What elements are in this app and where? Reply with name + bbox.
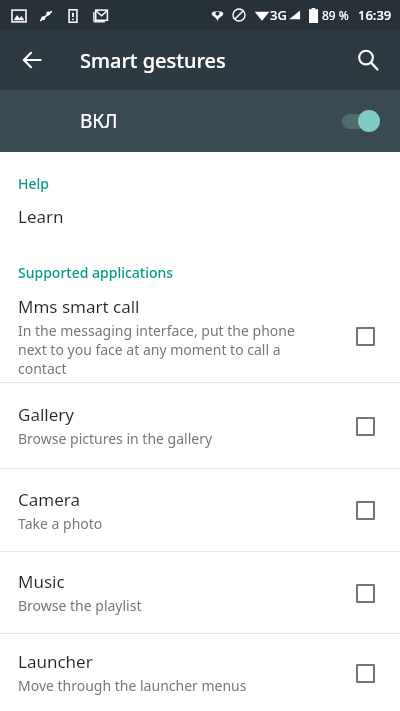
button[interactable]: ВКЛ (0, 90, 400, 152)
staticText: Learn (18, 205, 64, 228)
staticText: 16:39 (358, 6, 392, 24)
button[interactable]: Music (0, 552, 400, 633)
button[interactable]: Gallery (0, 383, 400, 468)
staticText: ВКЛ (80, 108, 118, 134)
button[interactable]: Camera (0, 469, 400, 551)
staticText: Mms smart call (18, 295, 140, 318)
staticText: Launcher (18, 650, 93, 673)
staticText: Browse pictures in the gallery (18, 429, 213, 448)
staticText: Help (18, 174, 49, 193)
staticText: Browse the playlist (18, 596, 142, 615)
staticText: In the messaging interface, put the phon… (18, 321, 324, 378)
staticText: Camera (18, 488, 80, 511)
staticText: Move through the launcher menus (18, 676, 247, 695)
button[interactable]: Launcher (0, 634, 400, 711)
staticText: Gallery (18, 403, 74, 426)
staticText: Take a photo (18, 514, 103, 533)
staticText: Supported applications (18, 263, 174, 282)
button[interactable]: Learn (0, 195, 400, 237)
staticText: 89 % (322, 7, 349, 23)
button[interactable]: Back (8, 36, 56, 84)
staticText: Music (18, 570, 65, 593)
staticText: Smart gestures (80, 47, 226, 74)
button[interactable]: Mms smart call (0, 290, 400, 382)
button[interactable]: Search (344, 36, 392, 84)
staticText: 3G (270, 6, 287, 24)
